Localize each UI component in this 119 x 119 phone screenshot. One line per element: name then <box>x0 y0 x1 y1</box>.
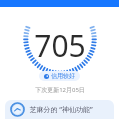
other: 芝麻信用功能 <box>10 102 25 117</box>
staticText: 信用较好 <box>51 72 75 80</box>
staticText: 下次更新12月05日 <box>35 86 85 94</box>
staticText: 芝麻分的 “神仙功能” <box>29 105 93 115</box>
button[interactable]: 芝麻信用功能 <box>5 100 114 119</box>
button[interactable]: 信用较好 <box>39 71 80 81</box>
staticText: 705 <box>34 25 86 66</box>
